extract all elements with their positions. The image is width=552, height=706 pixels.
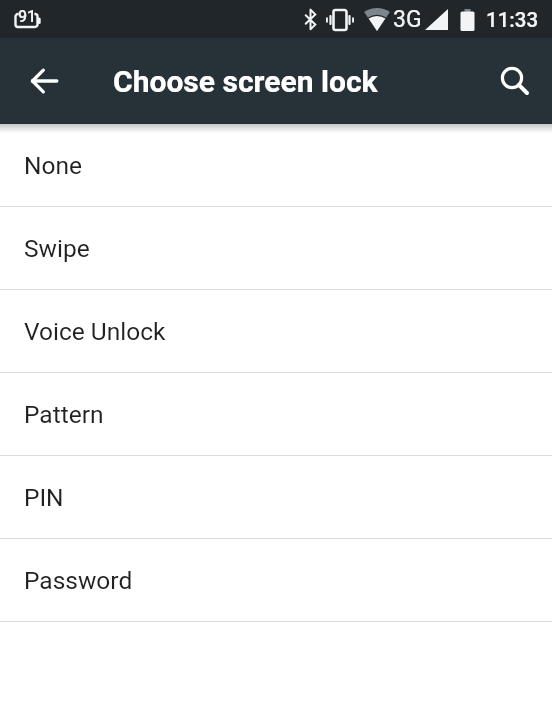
button[interactable]: PIN [0, 456, 552, 538]
button[interactable]: Password [0, 539, 552, 621]
staticText: Choose screen lock [113, 64, 378, 99]
staticText: PIN [24, 483, 64, 512]
button[interactable]: None [0, 124, 552, 206]
staticText: None [24, 151, 82, 180]
staticText: Voice Unlock [24, 317, 166, 346]
button[interactable] [489, 55, 541, 107]
staticText: Pattern [24, 400, 104, 429]
button[interactable]: Pattern [0, 373, 552, 455]
staticText: 11:33 [486, 8, 539, 32]
button[interactable]: Voice Unlock [0, 290, 552, 372]
staticText: Swipe [24, 234, 90, 263]
button[interactable]: Swipe [0, 207, 552, 289]
staticText: 91 [18, 7, 37, 26]
button[interactable] [18, 55, 70, 107]
staticText: Password [24, 566, 133, 595]
staticText: 3G [393, 6, 422, 33]
